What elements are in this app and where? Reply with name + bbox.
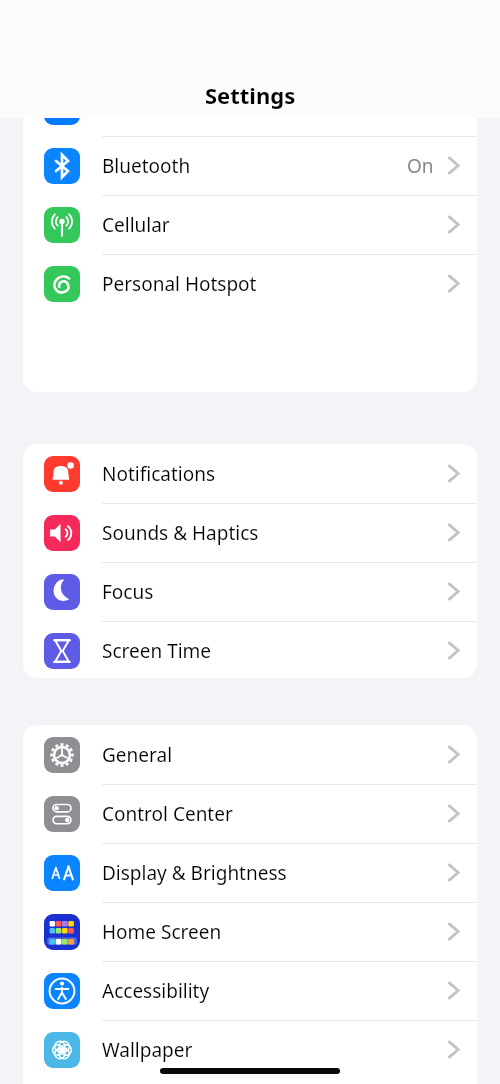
button[interactable]: General [23, 725, 477, 784]
button[interactable]: Screen Time [23, 621, 477, 678]
staticText: Screen Time [102, 638, 212, 664]
staticText: General [102, 742, 173, 768]
button[interactable]: Cellular [23, 195, 477, 254]
button[interactable]: Home Screen [23, 902, 477, 961]
button[interactable]: Control Center [23, 784, 477, 843]
staticText: Focus [102, 579, 154, 605]
staticText: Accessibility [102, 978, 210, 1004]
staticText: Bluetooth [102, 153, 191, 179]
staticText: Wallpaper [102, 1037, 193, 1063]
button[interactable]: Wallpaper [23, 1020, 477, 1079]
button[interactable]: Accessibility [23, 961, 477, 1020]
staticText: Home Screen [102, 919, 222, 945]
button[interactable]: Sounds & Haptics [23, 503, 477, 562]
staticText: Display & Brightness [102, 860, 287, 886]
staticText: Settings [205, 80, 296, 110]
button[interactable]: Personal Hotspot [23, 254, 477, 313]
button[interactable]: Focus [23, 562, 477, 621]
staticText: Sounds & Haptics [102, 520, 259, 546]
staticText: Cellular [102, 212, 170, 238]
staticText: On [407, 153, 434, 179]
staticText: Personal Hotspot [102, 271, 257, 297]
staticText: Notifications [102, 461, 216, 487]
staticText: Control Center [102, 801, 233, 827]
button[interactable]: Wi-Fi [23, 118, 477, 136]
button[interactable]: Bluetooth [23, 136, 477, 195]
button[interactable]: Display & Brightness [23, 843, 477, 902]
button[interactable]: Notifications [23, 444, 477, 503]
